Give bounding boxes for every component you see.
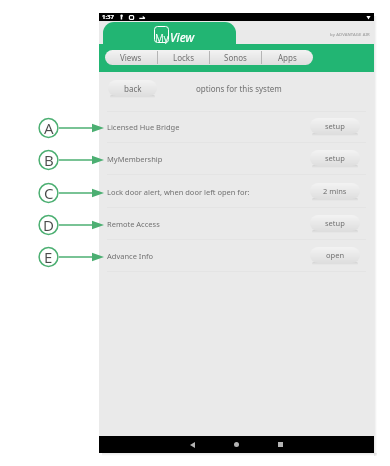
button[interactable]: Licensed Hue Bridge: [99, 111, 374, 143]
button[interactable]: Views: [105, 50, 157, 65]
staticText: Views: [120, 52, 142, 63]
staticText: E: [44, 247, 53, 267]
button[interactable]: Apps: [262, 50, 313, 65]
staticText: Lock door alert, when door left open for…: [107, 187, 250, 197]
staticText: setup: [325, 153, 345, 163]
button[interactable]: setup: [310, 215, 360, 231]
staticText: back: [124, 83, 142, 94]
staticText: Apps: [278, 52, 297, 63]
staticText: Locks: [173, 52, 194, 63]
button[interactable]: Lock door alert, when door left open for…: [99, 176, 374, 208]
staticText: D: [43, 215, 54, 235]
staticText: My: [155, 31, 169, 44]
staticText: open: [326, 250, 345, 260]
button[interactable]: back: [108, 80, 157, 96]
staticText: options for this system: [196, 83, 282, 94]
staticText: 1:37: [102, 13, 114, 21]
staticText: C: [44, 183, 54, 203]
staticText: Licensed Hue Bridge: [107, 122, 180, 132]
staticText: MyMembership: [107, 154, 163, 164]
button[interactable]: 2 mins: [310, 183, 360, 199]
button[interactable]: Remote Access: [99, 208, 374, 240]
button[interactable]: MyMembership: [99, 143, 374, 175]
button[interactable]: Locks: [158, 50, 209, 65]
staticText: Sonos: [224, 52, 247, 63]
button[interactable]: open: [310, 247, 360, 263]
staticText: setup: [325, 121, 345, 131]
staticText: A: [44, 118, 54, 138]
button[interactable]: Recent apps: [258, 436, 302, 453]
staticText: by ADVANTAGE AIR: [330, 32, 370, 38]
button[interactable]: My: [103, 22, 236, 44]
button[interactable]: setup: [310, 118, 360, 134]
staticText: 2 mins: [323, 186, 347, 196]
staticText: View: [170, 29, 195, 44]
staticText: setup: [325, 218, 345, 228]
staticText: B: [44, 150, 54, 170]
button[interactable]: setup: [310, 150, 360, 166]
button[interactable]: Home: [214, 436, 258, 453]
button[interactable]: Advance Info: [99, 240, 374, 272]
staticText: Remote Access: [107, 219, 160, 229]
button[interactable]: Back: [170, 436, 214, 453]
button[interactable]: Sonos: [210, 50, 261, 65]
staticText: Advance Info: [107, 251, 154, 261]
